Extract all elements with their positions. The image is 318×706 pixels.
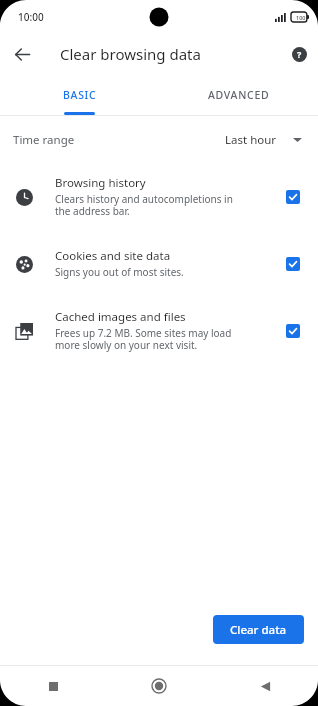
button[interactable]: ADVANCED bbox=[159, 74, 318, 115]
button[interactable]: Clear data bbox=[213, 615, 304, 644]
button[interactable]: Cookies and site data checkbox bbox=[280, 251, 306, 277]
staticText: BASIC bbox=[63, 88, 97, 102]
staticText: Clear browsing data bbox=[60, 44, 201, 64]
button[interactable]: Cached images and files bbox=[0, 297, 318, 364]
staticText: Signs you out of most sites. bbox=[55, 265, 184, 279]
button[interactable]: Recent apps bbox=[0, 666, 106, 706]
staticText: ? bbox=[297, 48, 302, 60]
button[interactable]: Back bbox=[6, 38, 39, 71]
staticText: 100 bbox=[296, 14, 306, 21]
button[interactable]: Cached images and files checkbox bbox=[280, 318, 306, 344]
button[interactable]: Help bbox=[284, 39, 314, 69]
staticText: Clears history and autocompletions in th… bbox=[55, 192, 233, 218]
button[interactable]: BASIC bbox=[0, 74, 159, 115]
button[interactable]: Cookies and site data bbox=[0, 230, 318, 297]
staticText: 10:00 bbox=[18, 10, 44, 24]
staticText: Clear data bbox=[230, 622, 287, 638]
staticText: Time range bbox=[13, 132, 75, 148]
button[interactable]: Time range bbox=[0, 116, 318, 163]
button[interactable]: Browsing history checkbox bbox=[280, 184, 306, 210]
button[interactable]: Browsing history bbox=[0, 163, 318, 230]
staticText: Cached images and files bbox=[55, 309, 186, 325]
staticText: ADVANCED bbox=[208, 88, 270, 102]
staticText: Frees up 7.2 MB. Some sites may load mor… bbox=[55, 326, 232, 352]
staticText: Browsing history bbox=[55, 175, 146, 191]
button[interactable]: Home bbox=[106, 666, 212, 706]
staticText: Cookies and site data bbox=[55, 248, 171, 264]
button[interactable]: Back bbox=[212, 666, 318, 706]
staticText: Last hour bbox=[225, 132, 277, 148]
